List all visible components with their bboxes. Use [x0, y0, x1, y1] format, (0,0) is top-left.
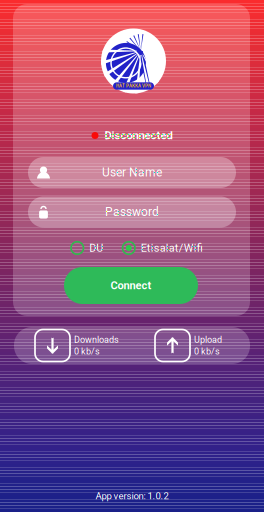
- button[interactable]: Upload: [155, 328, 251, 362]
- button[interactable]: Etisalat/Wifi: [122, 241, 203, 255]
- staticText: 0 kb/s: [194, 346, 220, 357]
- staticText: Upload: [194, 334, 222, 345]
- staticText: Password: [105, 205, 159, 219]
- staticText: 0 kb/s: [74, 346, 100, 357]
- staticText: Etisalat/Wifi: [141, 242, 203, 254]
- staticText: Disconnected: [104, 129, 172, 142]
- button[interactable]: DU: [70, 241, 103, 255]
- staticText: App version: 1.0.2: [95, 490, 168, 502]
- staticText: HAT PAKKA VPN: [116, 83, 151, 89]
- staticText: DU: [89, 242, 103, 254]
- button[interactable]: Connect: [64, 267, 198, 304]
- button[interactable]: Downloads: [35, 328, 131, 362]
- staticText: Downloads: [74, 334, 119, 345]
- button[interactable]: Password: [28, 196, 236, 227]
- staticText: User Name: [102, 165, 162, 180]
- staticText: Connect: [110, 279, 151, 292]
- button[interactable]: User Name: [28, 157, 236, 188]
- button[interactable]: App version: 1.0.2: [95, 490, 168, 502]
